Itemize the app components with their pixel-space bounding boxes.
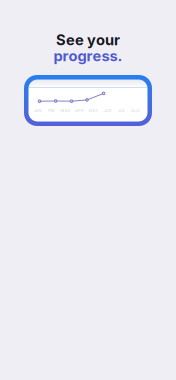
staticText: APR: [75, 108, 84, 113]
staticText: MAY: [88, 108, 98, 113]
staticText: See your: [56, 31, 120, 49]
staticText: MAR: [60, 108, 70, 113]
staticText: JAN: [33, 108, 41, 113]
staticText: FEB: [48, 108, 55, 113]
staticText: JUN: [103, 108, 111, 113]
staticText: AUG: [131, 108, 140, 113]
staticText: JUL: [118, 108, 125, 113]
staticText: progress.: [53, 47, 122, 65]
